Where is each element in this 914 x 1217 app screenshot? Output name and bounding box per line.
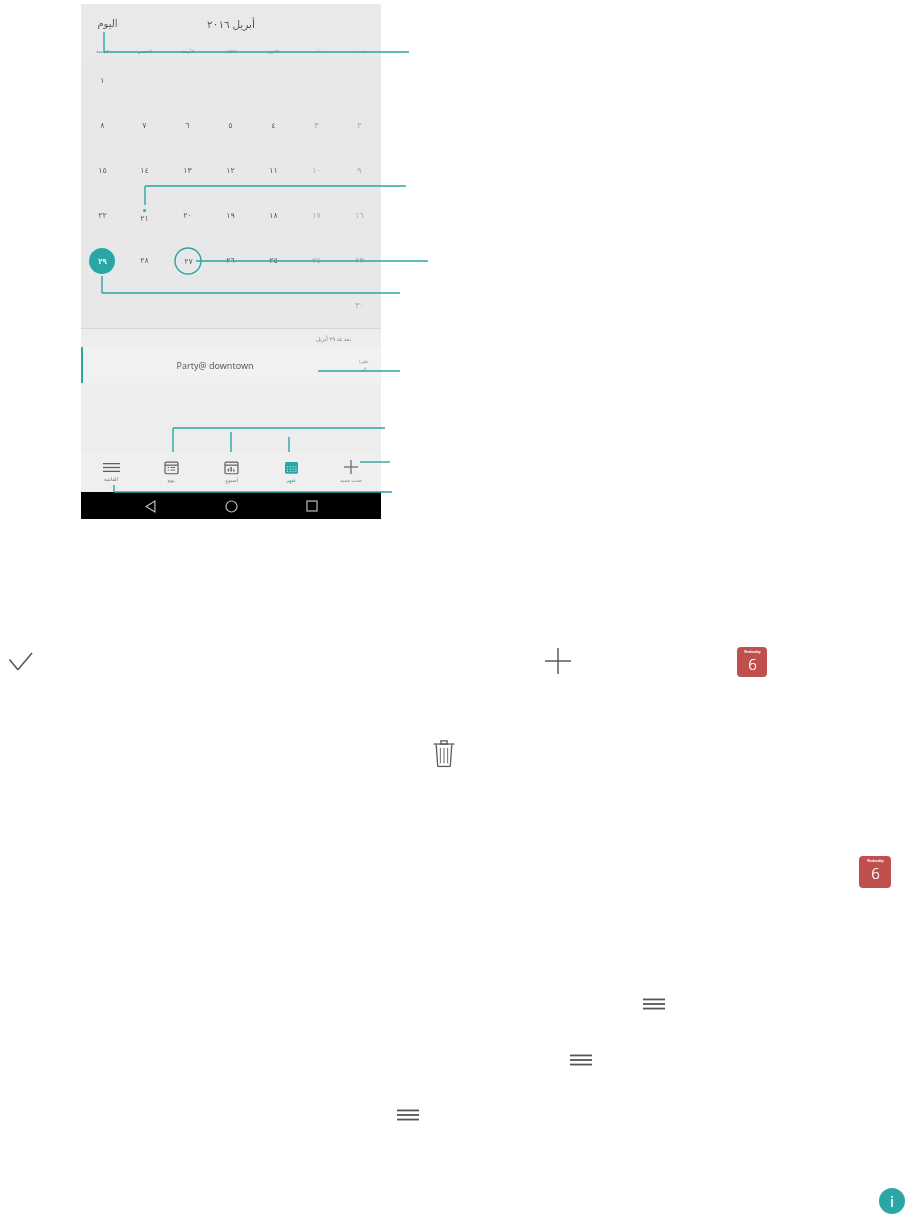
button[interactable]: ٧ xyxy=(123,103,166,148)
staticText: ٢٧ xyxy=(184,257,193,266)
button[interactable] xyxy=(295,283,338,328)
button[interactable]: ١٤ xyxy=(123,148,166,193)
button[interactable]: يوم xyxy=(141,452,201,492)
button[interactable] xyxy=(209,283,252,328)
staticText: ٦ xyxy=(185,121,190,130)
staticText: ٢ xyxy=(357,121,362,130)
button[interactable]: ٩ xyxy=(338,148,381,193)
button[interactable]: ١٠ xyxy=(295,148,338,193)
button[interactable]: Menu xyxy=(568,1049,594,1071)
button[interactable]: Home xyxy=(219,494,243,518)
button[interactable]: Menu xyxy=(641,993,667,1015)
button[interactable]: Add xyxy=(545,648,571,674)
staticText: الأحد xyxy=(312,49,321,54)
button[interactable]: ٢٥ xyxy=(252,238,295,283)
button[interactable]: ٣٠ xyxy=(338,283,381,328)
button[interactable]: ١٣ xyxy=(166,148,209,193)
button[interactable] xyxy=(81,283,123,328)
staticText: ٢١ xyxy=(140,214,149,223)
button[interactable]: أسبوع xyxy=(201,452,261,492)
button[interactable]: ٢٤ xyxy=(295,238,338,283)
staticText: ٢٩ xyxy=(98,257,107,266)
staticText: ١١ xyxy=(269,166,278,175)
staticText: ١٠ xyxy=(312,166,321,175)
staticText: أبريل ٢٠١٦ xyxy=(207,17,255,31)
staticText: ٢٦ xyxy=(226,256,235,265)
button[interactable]: Info xyxy=(879,1188,905,1214)
staticText: ٢٤ xyxy=(312,256,321,265)
staticText: Wednesday xyxy=(867,859,884,863)
button[interactable]: ٦ xyxy=(166,103,209,148)
button[interactable]: ١٥ xyxy=(81,148,123,193)
staticText: ١٤ xyxy=(140,166,149,175)
button[interactable]: ١٩ xyxy=(209,193,252,238)
staticText: ٢٠ xyxy=(183,211,192,220)
button[interactable]: Delete xyxy=(431,737,457,769)
staticText: ٧ xyxy=(142,121,147,130)
button[interactable]: شهر xyxy=(261,452,321,492)
button[interactable]: ٢٧ xyxy=(166,238,209,283)
staticText: الخميس xyxy=(137,49,153,54)
button[interactable]: ٢٩ xyxy=(81,238,123,283)
button[interactable]: ١١ xyxy=(252,148,295,193)
staticText: الأربعاء xyxy=(181,49,194,54)
staticText: ٢٥ xyxy=(269,256,278,265)
button[interactable]: Calendar app xyxy=(859,856,891,888)
button[interactable]: حدث جديد xyxy=(321,452,381,492)
button[interactable]: ٣ xyxy=(295,103,338,148)
staticText: بعد غد ٢٩ أبريل xyxy=(316,335,351,342)
staticText: يوم xyxy=(167,477,175,483)
staticText: أسبوع xyxy=(225,477,238,483)
button[interactable] xyxy=(166,283,209,328)
button[interactable]: القائمة xyxy=(81,452,141,492)
button[interactable]: ١٨ xyxy=(252,193,295,238)
staticText: ٣٠ xyxy=(355,301,364,310)
staticText: ١٢ xyxy=(226,166,235,175)
button[interactable]: ١٧ xyxy=(295,193,338,238)
button[interactable] xyxy=(123,283,166,328)
button[interactable]: Party@ downtown xyxy=(81,347,381,383)
staticText: ٢٣ xyxy=(355,256,364,265)
button[interactable]: ٢٨ xyxy=(123,238,166,283)
staticText: Party@ downtown xyxy=(176,359,254,371)
button[interactable]: Menu xyxy=(395,1104,421,1126)
staticText: الاثنين xyxy=(268,49,280,54)
staticText: ١٩ xyxy=(226,211,235,220)
staticText: ١٨ xyxy=(269,211,278,220)
staticText: شهر xyxy=(286,477,296,483)
button[interactable]: ٢٦ xyxy=(209,238,252,283)
staticText: 6 xyxy=(748,654,757,674)
staticText: ١٦ xyxy=(355,211,364,220)
button[interactable]: ١ xyxy=(81,58,123,103)
button[interactable]: Recents xyxy=(300,494,324,518)
button[interactable] xyxy=(252,283,295,328)
button[interactable]: ١٢ xyxy=(209,148,252,193)
staticText: الجمعة xyxy=(96,49,109,54)
button[interactable]: Check xyxy=(8,647,38,677)
staticText: ١ xyxy=(100,76,105,85)
button[interactable]: ٥ xyxy=(209,103,252,148)
button[interactable]: ٢٠ xyxy=(166,193,209,238)
staticText: ٣ xyxy=(314,121,319,130)
button[interactable]: ١٦ xyxy=(338,193,381,238)
button[interactable]: ٨ xyxy=(81,103,123,148)
button[interactable]: ٤ xyxy=(252,103,295,148)
staticText: 6 xyxy=(871,863,880,883)
staticText: القائمة xyxy=(104,476,118,482)
staticText: ١٥ xyxy=(98,166,107,175)
button[interactable]: ٢١ xyxy=(123,193,166,238)
button[interactable]: ٢٣ xyxy=(338,238,381,283)
button[interactable]: Back xyxy=(138,494,162,518)
staticText: السبت xyxy=(353,49,366,54)
button[interactable]: Calendar app xyxy=(737,647,767,677)
button[interactable]: ٢٢ xyxy=(81,193,123,238)
staticText: ٤ xyxy=(271,121,276,130)
button[interactable]: اليوم xyxy=(93,15,122,33)
